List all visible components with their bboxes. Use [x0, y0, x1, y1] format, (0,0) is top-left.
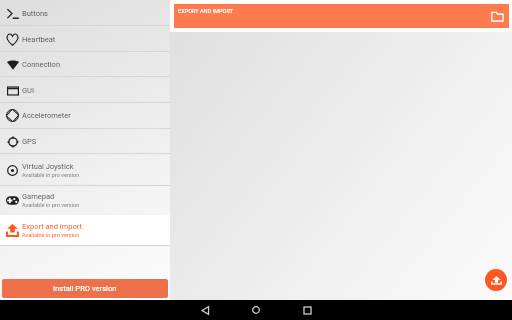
button[interactable]: Heartbeat — [0, 26, 170, 52]
button[interactable]: Virtual Joystick — [0, 154, 170, 186]
button[interactable]: Gamepad — [0, 185, 170, 215]
staticText: Available in pro version — [22, 202, 80, 209]
staticText: Connection — [22, 60, 61, 69]
button[interactable]: Back — [196, 300, 214, 320]
staticText: Virtual Joystick — [22, 162, 74, 171]
button[interactable]: Upload — [485, 269, 507, 291]
button[interactable]: GUI — [0, 77, 170, 103]
button[interactable]: Recents — [298, 300, 316, 320]
staticText: Export and import — [22, 222, 82, 231]
button[interactable]: Install PRO version — [2, 279, 168, 298]
button[interactable]: Home — [247, 300, 265, 320]
staticText: GPS — [22, 137, 37, 146]
button[interactable]: Open folder — [489, 8, 505, 24]
staticText: EXPORT AND IMPORT — [178, 8, 233, 15]
staticText: Install PRO version — [53, 284, 117, 293]
staticText: GUI — [22, 86, 35, 95]
button[interactable]: Connection — [0, 51, 170, 77]
staticText: Available in pro version — [22, 172, 80, 179]
staticText: Available in pro version — [22, 232, 80, 239]
button[interactable]: Buttons — [0, 0, 170, 26]
button[interactable]: Export and import — [0, 215, 170, 245]
button[interactable]: Accelerometer — [0, 102, 170, 128]
staticText: Gamepad — [22, 192, 55, 201]
staticText: Buttons — [22, 9, 48, 18]
staticText: Accelerometer — [22, 111, 71, 120]
staticText: Heartbeat — [22, 35, 56, 44]
button[interactable]: GPS — [0, 128, 170, 154]
